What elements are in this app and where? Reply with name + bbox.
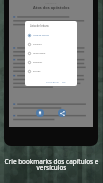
button[interactable]: Estudo (25, 67, 77, 76)
staticText: Revisitar (33, 61, 43, 64)
button[interactable]: Favorito (25, 40, 77, 49)
button[interactable]: OK (62, 80, 66, 83)
button[interactable]: Importante (25, 49, 77, 58)
staticText: Importante (33, 52, 46, 55)
staticText: Favorito (33, 43, 42, 46)
staticText: CANCELAR (46, 80, 59, 83)
staticText: Capítulo 8 (45, 1, 57, 4)
button[interactable]: CANCELAR (46, 80, 59, 83)
button[interactable]: Share (58, 109, 66, 117)
staticText: Crie bookmarks dos capítulos e versículo… (0, 157, 103, 172)
staticText: Lista de leitura (33, 34, 49, 37)
button[interactable]: Revisitar (25, 58, 77, 67)
staticText: OK (62, 80, 66, 83)
button[interactable]: Lista de leitura (25, 31, 77, 40)
button[interactable]: Bookmark (36, 109, 44, 117)
staticText: Estudo (33, 70, 41, 73)
staticText: Lista de leitura (30, 24, 49, 28)
staticText: Atos dos apóstolos (33, 5, 70, 10)
